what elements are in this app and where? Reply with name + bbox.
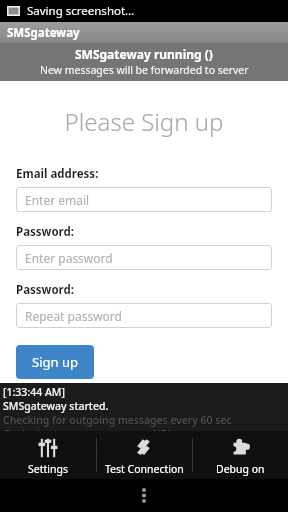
- staticText: Settings: [28, 462, 68, 476]
- staticText: SMSgateway: [7, 25, 80, 41]
- staticText: SMSgateway running (): [75, 46, 213, 62]
- button[interactable]: Sign up: [16, 345, 94, 379]
- staticText: Test Connection: [105, 462, 184, 476]
- staticText: Checking for outgoing messages every 60 …: [3, 413, 232, 427]
- staticText: Please Sign up: [0, 105, 288, 138]
- button[interactable]: Debug on: [193, 431, 288, 479]
- staticText: SMSgateway started.: [3, 399, 109, 413]
- button[interactable]: Test Connection: [97, 431, 192, 479]
- staticText: Email address:: [16, 166, 99, 182]
- staticText: Real-time connection disabled: [3, 441, 155, 455]
- button[interactable]: Enter email: [16, 187, 272, 212]
- button[interactable]: Repeat password: [16, 303, 272, 328]
- staticText: Password:: [16, 224, 75, 240]
- staticText: Repeat password: [25, 308, 122, 324]
- button[interactable]: More options: [126, 479, 162, 512]
- staticText: New messages will be forwarded to server: [40, 63, 249, 77]
- staticText: [1:33:44 AM]: [3, 385, 65, 399]
- staticText: Password:: [16, 282, 75, 298]
- staticText: Sign up: [32, 353, 78, 371]
- staticText: Saving screenshot…: [27, 3, 135, 19]
- staticText: Can't check messages; server URL not set: [3, 427, 211, 441]
- staticText: [1:34:44 AM]: [3, 455, 65, 469]
- button[interactable]: Settings: [0, 431, 96, 479]
- staticText: Debug on: [216, 462, 265, 476]
- staticText: Enter email: [25, 192, 90, 208]
- button[interactable]: Enter password: [16, 245, 272, 270]
- staticText: Enter password: [25, 250, 113, 266]
